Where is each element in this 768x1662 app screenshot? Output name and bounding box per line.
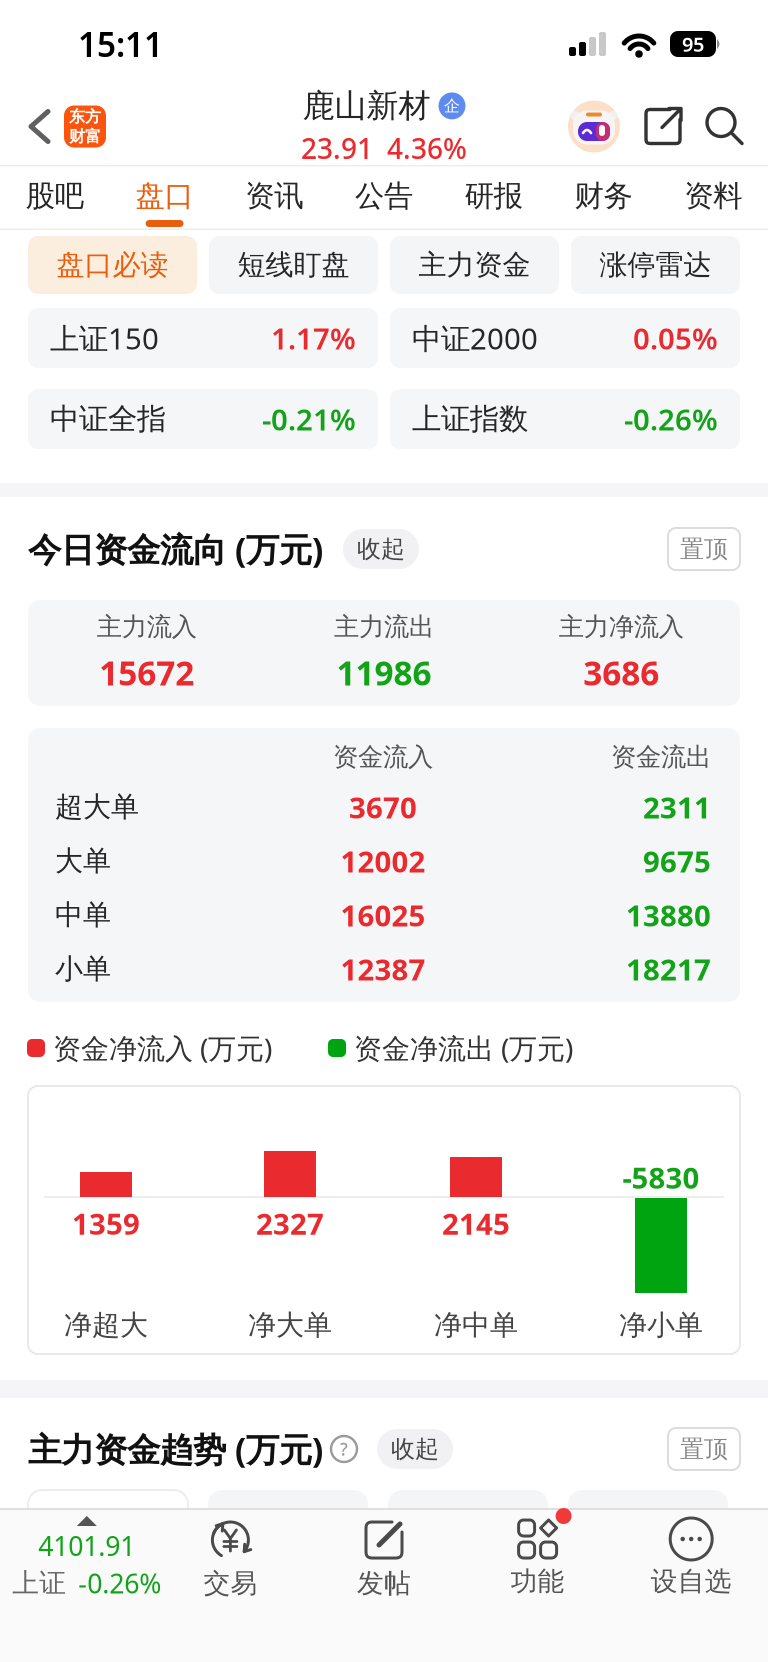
button[interactable]: 中证2000 [390,308,740,368]
staticText: 净大单 [248,1308,332,1342]
staticText: 中单 [55,898,111,932]
staticText: 盘口必读 [56,248,168,282]
staticText: 净超大 [64,1308,148,1342]
staticText: 主力资金趋势 (万元) [28,1427,323,1471]
staticText: ? [340,1437,348,1460]
staticText: 发帖 [357,1567,411,1600]
button[interactable]: 设自选 [614,1510,768,1598]
staticText: 净小单 [619,1308,703,1342]
button[interactable]: Share [620,105,684,147]
button[interactable]: 上证指数 [390,389,740,449]
staticText: 1.17% [271,318,356,357]
staticText: 资金净流入 (万元) [53,1029,272,1067]
button[interactable]: 盘口必读 [28,236,197,294]
staticText: 95 [682,31,704,57]
button[interactable]: 当日 [28,1490,188,1530]
staticText: 中证全指 [50,401,166,437]
button[interactable]: 资料 [658,178,768,227]
staticText: 企 [444,96,460,116]
staticText: 资金流入 [333,741,433,772]
staticText: 主力资金 [418,248,530,282]
button[interactable]: 盘口 [110,178,219,227]
staticText: 超大单 [55,790,139,824]
staticText: 研报 [465,178,523,214]
staticText: 净中单 [434,1308,518,1342]
button[interactable]: 收起 [377,1429,453,1469]
staticText: 0.05% [633,318,718,357]
button[interactable]: 发帖 [307,1510,461,1600]
staticText: 主力净流入 [559,611,684,642]
staticText: 短线盯盘 [237,248,349,282]
button[interactable]: 交易 [154,1510,307,1600]
staticText: 11986 [336,650,431,695]
button[interactable]: 涨停雷达 [571,236,740,294]
button[interactable]: 财务 [549,178,658,227]
staticText: 资料 [684,178,742,214]
button[interactable]: 上证150 [28,308,378,368]
button[interactable]: Search [684,105,768,147]
staticText: 12387 [340,949,425,988]
button[interactable]: 功能 [461,1510,614,1598]
button[interactable]: 研报 [439,178,549,227]
staticText: 9675 [643,841,711,880]
staticText: 2145 [442,1204,510,1243]
staticText: 13880 [626,895,711,934]
staticText: 15672 [99,650,194,695]
button[interactable]: 收起 [343,529,419,569]
staticText: 设自选 [651,1565,732,1598]
staticText: 公告 [355,178,413,214]
staticText: 主力流出 [334,611,434,642]
staticText: 财富 [69,126,101,146]
staticText: 上证 [12,1567,66,1599]
staticText: 置顶 [680,1434,728,1464]
staticText: 3686 [583,650,659,695]
button[interactable]: 主力资金 [390,236,559,294]
button[interactable]: 东方财富 [52,105,106,147]
staticText: -0.26% [78,1565,161,1601]
staticText: 东方 [69,107,101,126]
button[interactable]: 置顶 [668,1428,740,1470]
button[interactable]: 5日 [388,1490,548,1530]
staticText: 资讯 [245,178,303,214]
staticText: 中证2000 [412,318,538,357]
staticText: 18217 [626,949,711,988]
staticText: 主力流入 [97,611,197,642]
staticText: 财务 [574,178,632,214]
staticText: 2327 [256,1204,324,1243]
staticText: 12002 [340,841,425,880]
staticText: 资金净流出 (万元) [354,1029,573,1067]
staticText: 盘口 [136,178,194,214]
button[interactable]: 资讯 [219,178,329,227]
button[interactable]: Back [0,109,52,143]
staticText: 大单 [55,844,111,878]
button[interactable]: 置顶 [668,528,740,570]
button[interactable]: 10日 [568,1490,728,1530]
staticText: 3670 [349,787,417,826]
staticText: 1359 [72,1204,140,1243]
staticText: 交易 [203,1567,257,1600]
button[interactable]: 4101.91 [0,1510,154,1601]
staticText: 今日资金流向 (万元) [28,527,323,571]
button[interactable]: 中证全指 [28,389,378,449]
button[interactable]: 股吧 [0,178,110,227]
staticText: 置顶 [680,534,728,564]
staticText: 15:11 [78,22,163,66]
button[interactable]: 说明 [323,1436,357,1462]
staticText: 股吧 [26,178,84,214]
staticText: 上证150 [50,318,159,357]
button[interactable]: 公告 [329,178,439,227]
button[interactable]: 短线盯盘 [209,236,378,294]
staticText: 23.91 4.36% [301,130,467,167]
staticText: -0.21% [262,399,356,438]
staticText: 上证指数 [412,401,528,437]
staticText: 4101.91 [38,1528,135,1563]
staticText: 涨停雷达 [599,248,711,282]
staticText: 收起 [391,1434,439,1464]
button[interactable]: 3日 [208,1490,368,1530]
staticText: -5830 [622,1158,699,1197]
staticText: 16025 [340,895,425,934]
staticText: 小单 [55,952,111,986]
staticText: 功能 [511,1565,565,1598]
button[interactable]: AI 助手 [568,100,620,152]
staticText: 收起 [357,534,405,564]
